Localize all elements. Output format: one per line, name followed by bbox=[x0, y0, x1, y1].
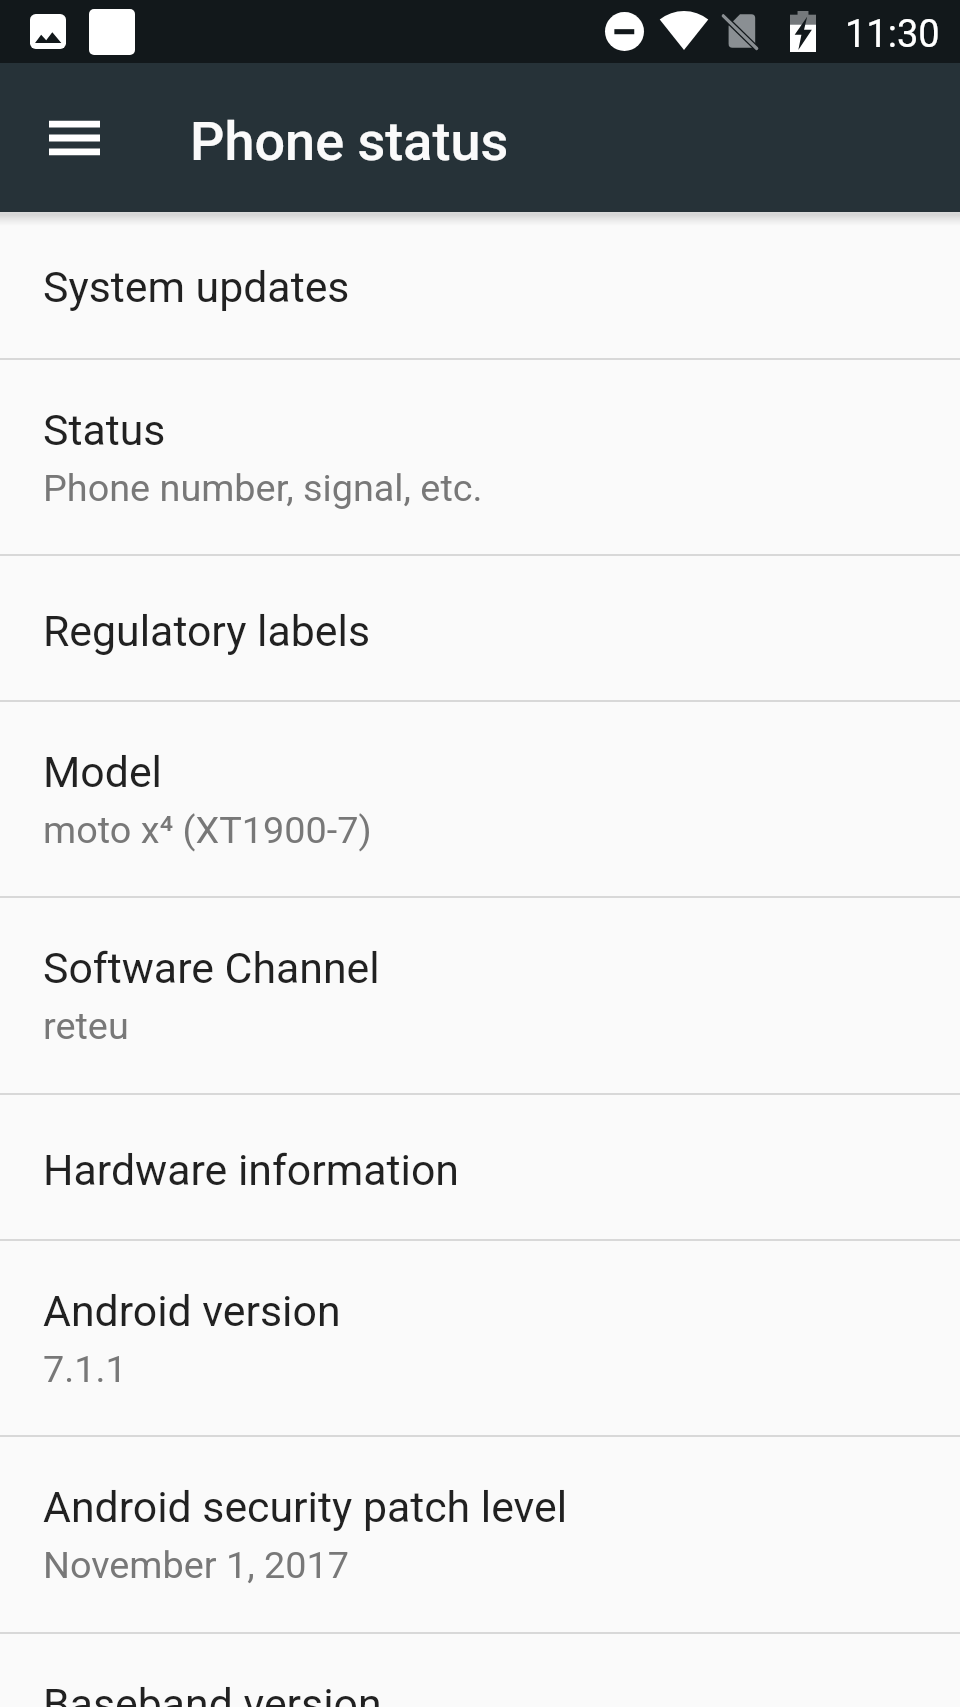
staticText: moto x⁴ (XT1900-7) bbox=[43, 808, 372, 852]
staticText: Hardware information bbox=[43, 1145, 459, 1195]
staticText: November 1, 2017 bbox=[43, 1543, 349, 1587]
button[interactable]: Software Channel bbox=[0, 898, 960, 1093]
staticText: reteu bbox=[43, 1004, 129, 1048]
staticText: Android version bbox=[43, 1286, 341, 1336]
staticText: System updates bbox=[43, 262, 350, 312]
staticText: Software Channel bbox=[43, 943, 380, 993]
button[interactable]: Android security patch level bbox=[0, 1437, 960, 1632]
staticText: Phone number, signal, etc. bbox=[43, 466, 483, 510]
button[interactable]: System updates bbox=[0, 212, 960, 358]
button[interactable]: Baseband version bbox=[0, 1634, 960, 1707]
staticText: Model bbox=[43, 747, 163, 797]
button[interactable]: Regulatory labels bbox=[0, 556, 960, 700]
staticText: 7.1.1 bbox=[43, 1347, 127, 1391]
staticText: Regulatory labels bbox=[43, 606, 371, 656]
button[interactable]: Open navigation drawer bbox=[28, 92, 120, 184]
staticText: Status bbox=[43, 405, 166, 455]
staticText: Android security patch level bbox=[43, 1482, 568, 1532]
staticText: Phone status bbox=[190, 110, 509, 173]
staticText: 11:30 bbox=[845, 12, 940, 57]
button[interactable]: Hardware information bbox=[0, 1095, 960, 1239]
staticText: Baseband version bbox=[43, 1679, 382, 1707]
button[interactable]: Status bbox=[0, 360, 960, 554]
button[interactable]: Model bbox=[0, 702, 960, 896]
button[interactable]: Android version bbox=[0, 1241, 960, 1435]
